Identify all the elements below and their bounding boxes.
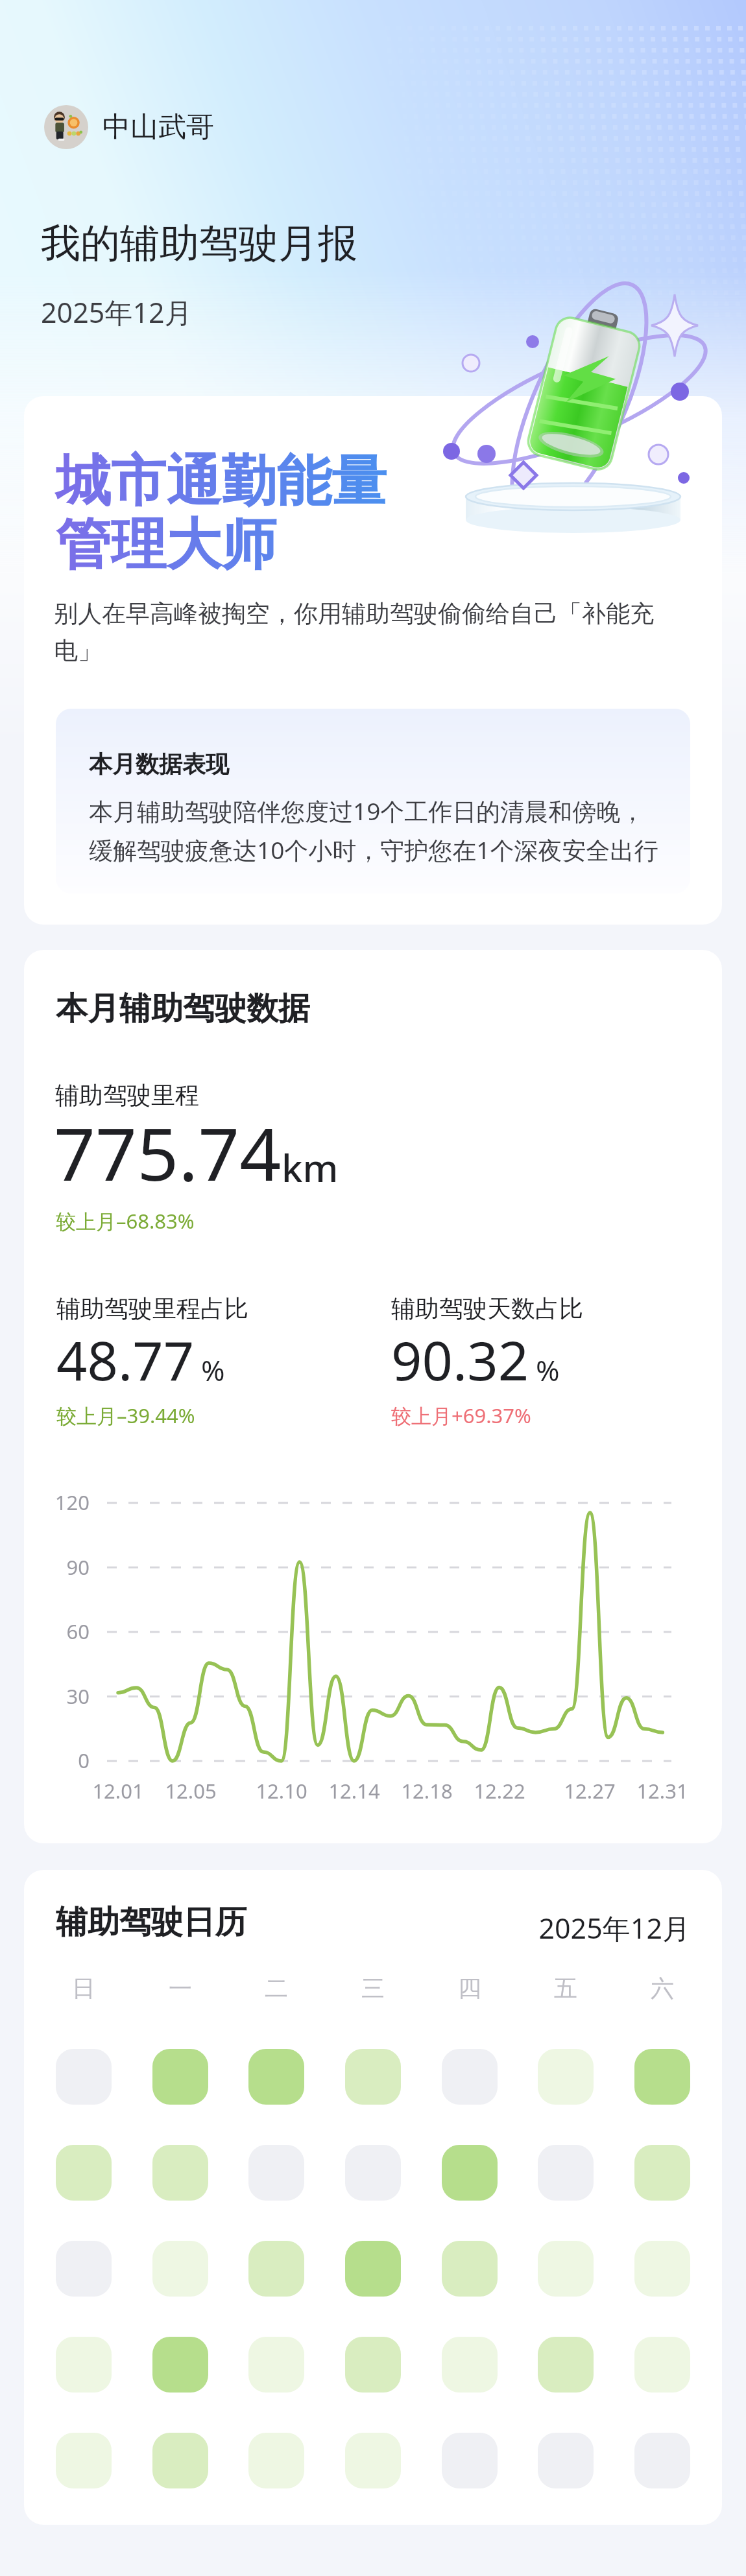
staticText: 48.77 bbox=[56, 1323, 195, 1396]
button[interactable] bbox=[152, 2049, 208, 2105]
staticText: 四 bbox=[458, 1974, 481, 2003]
button[interactable] bbox=[56, 2337, 112, 2393]
staticText: 别人在早高峰被掏空，你用辅助驾驶偷偷给自己「补能充电」 bbox=[54, 598, 664, 666]
staticText: 辅助驾驶里程 bbox=[55, 1080, 199, 1111]
staticText: km bbox=[282, 1142, 339, 1193]
button[interactable] bbox=[442, 2433, 498, 2488]
button[interactable] bbox=[56, 2433, 112, 2488]
staticText: 12.18 bbox=[388, 1777, 466, 1804]
button[interactable] bbox=[152, 2337, 208, 2393]
button[interactable] bbox=[442, 2241, 498, 2297]
button[interactable] bbox=[345, 2049, 401, 2105]
staticText: 城市通勤能量 管理大师 bbox=[56, 447, 387, 580]
button[interactable] bbox=[345, 2145, 401, 2201]
staticText: 2025年12月 bbox=[41, 293, 193, 331]
button[interactable] bbox=[345, 2433, 401, 2488]
button[interactable] bbox=[634, 2145, 690, 2201]
staticText: 较上月–39.44% bbox=[56, 1402, 195, 1429]
staticText: 本月辅助驾驶数据 bbox=[56, 989, 310, 1029]
staticText: 辅助驾驶里程占比 bbox=[56, 1294, 248, 1324]
staticText: 辅助驾驶日历 bbox=[56, 1902, 247, 1943]
button[interactable] bbox=[442, 2337, 498, 2393]
button[interactable] bbox=[538, 2241, 594, 2297]
button[interactable] bbox=[248, 2049, 304, 2105]
button[interactable] bbox=[152, 2145, 208, 2201]
staticText: 12.10 bbox=[243, 1777, 320, 1804]
button[interactable] bbox=[152, 2433, 208, 2488]
button[interactable] bbox=[248, 2145, 304, 2201]
staticText: 60 bbox=[34, 1618, 90, 1645]
button[interactable] bbox=[152, 2241, 208, 2297]
staticText: 12.01 bbox=[79, 1777, 157, 1804]
staticText: 较上月+69.37% bbox=[391, 1402, 531, 1429]
button[interactable] bbox=[538, 2145, 594, 2201]
button[interactable] bbox=[56, 2241, 112, 2297]
staticText: 12.14 bbox=[315, 1777, 393, 1804]
other: Profile avatar bbox=[44, 105, 88, 149]
staticText: 日 bbox=[72, 1974, 95, 2003]
button[interactable] bbox=[538, 2433, 594, 2488]
staticText: 12.31 bbox=[623, 1777, 701, 1804]
button[interactable] bbox=[56, 2145, 112, 2201]
button[interactable] bbox=[345, 2337, 401, 2393]
staticText: 2025年12月 bbox=[413, 1909, 690, 1947]
staticText: 0 bbox=[34, 1747, 90, 1774]
staticText: % bbox=[536, 1351, 560, 1389]
button[interactable] bbox=[634, 2337, 690, 2393]
staticText: 二 bbox=[265, 1974, 288, 2003]
staticText: 三 bbox=[361, 1974, 385, 2003]
button[interactable] bbox=[634, 2433, 690, 2488]
button[interactable] bbox=[538, 2337, 594, 2393]
staticText: 12.27 bbox=[551, 1777, 629, 1804]
staticText: 六 bbox=[651, 1974, 674, 2003]
staticText: 90.32 bbox=[391, 1323, 529, 1396]
button[interactable] bbox=[248, 2433, 304, 2488]
staticText: 90 bbox=[34, 1554, 90, 1581]
button[interactable] bbox=[634, 2241, 690, 2297]
staticText: 一 bbox=[169, 1974, 192, 2003]
button[interactable] bbox=[248, 2337, 304, 2393]
button[interactable] bbox=[56, 2049, 112, 2105]
staticText: 120 bbox=[34, 1489, 90, 1516]
staticText: 本月辅助驾驶陪伴您度过19个工作日的清晨和傍晚， 缓解驾驶疲惫达10个小时，守护… bbox=[89, 794, 676, 866]
staticText: 较上月–68.83% bbox=[56, 1207, 195, 1235]
button[interactable] bbox=[442, 2049, 498, 2105]
button[interactable] bbox=[442, 2145, 498, 2201]
staticText: 30 bbox=[34, 1683, 90, 1710]
staticText: 中山武哥 bbox=[102, 110, 214, 145]
staticText: 五 bbox=[554, 1974, 577, 2003]
staticText: 辅助驾驶天数占比 bbox=[391, 1294, 583, 1324]
button[interactable] bbox=[634, 2049, 690, 2105]
button[interactable]: Profile avatar bbox=[44, 105, 214, 149]
button[interactable] bbox=[538, 2049, 594, 2105]
staticText: % bbox=[201, 1351, 225, 1389]
button[interactable] bbox=[345, 2241, 401, 2297]
staticText: 12.22 bbox=[461, 1777, 538, 1804]
button[interactable] bbox=[248, 2241, 304, 2297]
staticText: 775.74 bbox=[54, 1103, 282, 1202]
staticText: 我的辅助驾驶月报 bbox=[41, 219, 357, 268]
staticText: 本月数据表现 bbox=[89, 750, 229, 779]
staticText: 12.05 bbox=[152, 1777, 230, 1804]
